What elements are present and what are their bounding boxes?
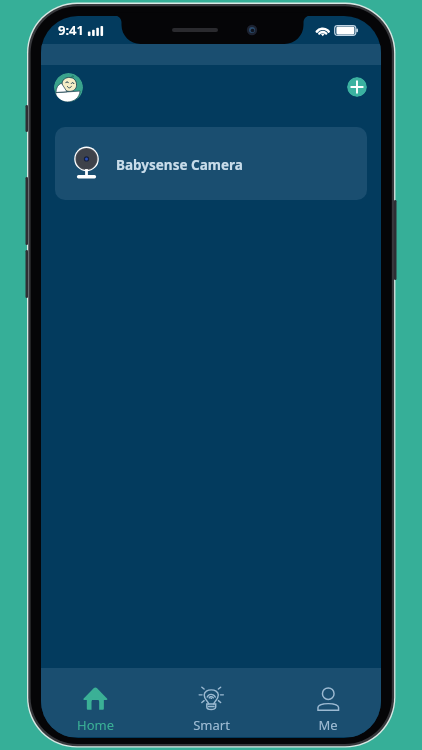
staticText: 9:41 — [58, 21, 84, 39]
staticText: Me — [318, 716, 338, 734]
staticText: Home — [77, 716, 114, 734]
button[interactable]: Profile — [54, 73, 83, 102]
button[interactable]: Home — [57, 668, 133, 737]
staticText: Smart — [193, 716, 230, 734]
button[interactable]: Me — [290, 668, 366, 737]
staticText: Babysense Camera — [116, 156, 243, 174]
button[interactable]: Add device — [347, 77, 367, 97]
button[interactable]: Babysense Camera — [55, 127, 367, 200]
button[interactable]: Smart — [173, 668, 249, 737]
